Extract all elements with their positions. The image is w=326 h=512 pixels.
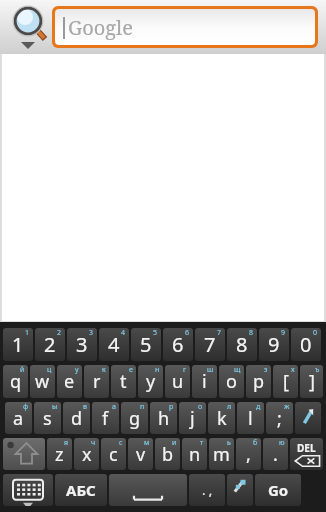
staticText: ж xyxy=(284,402,290,412)
staticText: y xyxy=(146,369,156,394)
button[interactable]: p xyxy=(246,365,271,398)
staticText: ь xyxy=(227,438,231,448)
button[interactable]: f xyxy=(92,402,119,434)
staticText: 3 xyxy=(76,331,88,358)
button[interactable]: АБС xyxy=(55,474,107,506)
button[interactable]: 6 xyxy=(163,328,193,361)
staticText: o xyxy=(226,369,237,394)
staticText: а xyxy=(112,402,116,412)
staticText: 5 xyxy=(153,328,158,338)
staticText: 8 xyxy=(249,328,254,338)
button[interactable]: 9 xyxy=(259,328,289,361)
staticText: 7 xyxy=(204,331,216,358)
staticText: 9 xyxy=(268,331,280,358)
button[interactable]: Emoji xyxy=(227,474,253,506)
staticText: 7 xyxy=(217,328,222,338)
button[interactable]: l xyxy=(237,402,264,434)
button[interactable]: 2 xyxy=(35,328,65,361)
staticText: x xyxy=(82,442,92,467)
button[interactable]: . xyxy=(263,438,288,470)
button[interactable]: g xyxy=(121,402,148,434)
button[interactable]: . , xyxy=(189,474,225,506)
staticText: d xyxy=(71,406,83,431)
staticText: z xyxy=(55,442,64,467)
button[interactable]: k xyxy=(208,402,235,434)
button[interactable]: z xyxy=(47,438,72,470)
button[interactable]: 8 xyxy=(227,328,257,361)
button[interactable]: i xyxy=(192,365,217,398)
staticText: p xyxy=(253,369,265,394)
button[interactable]: Space xyxy=(109,474,187,506)
staticText: у xyxy=(75,365,79,375)
staticText: q xyxy=(10,369,22,394)
button[interactable]: y xyxy=(138,365,163,398)
button[interactable]: Google xyxy=(55,9,315,45)
staticText: , xyxy=(246,442,251,467)
staticText: 1 xyxy=(25,328,30,338)
button[interactable]: o xyxy=(219,365,244,398)
button[interactable]: ] xyxy=(300,365,323,398)
staticText: ч xyxy=(91,438,96,448)
button[interactable]: h xyxy=(150,402,177,434)
staticText: 2 xyxy=(44,331,56,358)
staticText: д xyxy=(256,402,261,412)
staticText: [ xyxy=(283,369,289,394)
button[interactable]: Delete xyxy=(290,438,323,470)
button[interactable]: 3 xyxy=(67,328,97,361)
staticText: ы xyxy=(52,402,58,412)
button[interactable]: x xyxy=(74,438,99,470)
button[interactable]: s xyxy=(34,402,61,434)
button[interactable]: b xyxy=(155,438,180,470)
staticText: ц xyxy=(47,365,52,375)
button[interactable]: v xyxy=(128,438,153,470)
button[interactable]: t xyxy=(111,365,136,398)
button[interactable]: w xyxy=(30,365,55,398)
staticText: о xyxy=(198,402,203,412)
staticText: 1 xyxy=(12,331,24,358)
staticText: 5 xyxy=(140,331,152,358)
button[interactable]: m xyxy=(209,438,234,470)
button[interactable]: 0 xyxy=(291,328,321,361)
button[interactable]: Hide keyboard xyxy=(3,474,53,506)
button[interactable]: Shift xyxy=(3,438,45,470)
staticText: i xyxy=(202,369,207,394)
button[interactable]: u xyxy=(165,365,190,398)
staticText: ш xyxy=(207,365,214,375)
button[interactable]: 4 xyxy=(99,328,129,361)
button[interactable]: 1 xyxy=(3,328,33,361)
staticText: ъ xyxy=(315,365,320,375)
button[interactable]: [ xyxy=(273,365,298,398)
staticText: 2 xyxy=(57,328,62,338)
staticText: l xyxy=(248,406,253,431)
staticText: 4 xyxy=(121,328,126,338)
button[interactable]: n xyxy=(182,438,207,470)
button[interactable]: e xyxy=(57,365,82,398)
button[interactable]: Enter xyxy=(295,402,321,434)
staticText: 4 xyxy=(108,331,120,358)
button[interactable]: a xyxy=(5,402,32,434)
button[interactable]: ; xyxy=(266,402,293,434)
button[interactable]: r xyxy=(84,365,109,398)
staticText: a xyxy=(13,406,24,431)
staticText: й xyxy=(20,365,25,375)
button[interactable]: q xyxy=(3,365,28,398)
button[interactable]: c xyxy=(101,438,126,470)
button[interactable]: d xyxy=(63,402,90,434)
staticText: в xyxy=(83,402,87,412)
button[interactable]: 5 xyxy=(131,328,161,361)
button[interactable]: , xyxy=(236,438,261,470)
staticText: t xyxy=(120,369,127,394)
staticText: с xyxy=(119,438,123,448)
button[interactable]: Go xyxy=(255,474,301,506)
staticText: c xyxy=(109,442,118,467)
staticText: DEL xyxy=(297,441,316,455)
button[interactable]: Search engine selector xyxy=(4,0,52,54)
staticText: т xyxy=(200,438,204,448)
staticText: e xyxy=(64,369,75,394)
staticText: п xyxy=(140,402,145,412)
staticText: j xyxy=(190,406,195,431)
button[interactable]: j xyxy=(179,402,206,434)
staticText: ф xyxy=(23,402,29,412)
staticText: 6 xyxy=(172,331,184,358)
button[interactable]: 7 xyxy=(195,328,225,361)
